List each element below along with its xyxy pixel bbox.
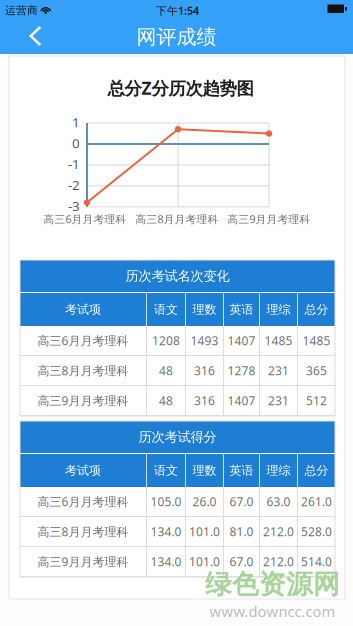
- staticText: 1407: [227, 332, 255, 348]
- staticText: 105.0: [150, 493, 181, 509]
- staticText: 高三8月月考理科: [37, 523, 128, 539]
- staticText: 1485: [302, 332, 330, 348]
- staticText: 231: [268, 392, 289, 408]
- staticText: 67.0: [229, 493, 253, 509]
- staticText: 理综: [266, 302, 290, 317]
- staticText: 高三6月月考理科: [43, 212, 126, 226]
- button[interactable]: Back: [13, 17, 57, 55]
- staticText: 514.0: [301, 553, 332, 569]
- staticText: 高三9月月考理科: [227, 212, 310, 226]
- staticText: 高三6月月考理科: [37, 332, 128, 348]
- staticText: 历次考试名次变化: [125, 268, 229, 284]
- staticText: 528.0: [301, 523, 332, 539]
- staticText: 512: [306, 392, 327, 408]
- staticText: 26.0: [192, 493, 216, 509]
- staticText: 1407: [227, 392, 255, 408]
- staticText: 考试项: [65, 463, 101, 478]
- staticText: 理数: [192, 463, 216, 478]
- staticText: -3: [68, 197, 80, 215]
- staticText: 语文: [154, 463, 178, 478]
- staticText: 理综: [266, 463, 290, 478]
- staticText: 网评成绩: [136, 25, 216, 49]
- staticText: 考试项: [65, 302, 101, 317]
- staticText: 316: [194, 392, 215, 408]
- staticText: 运营商: [5, 4, 38, 17]
- staticText: 下午1:54: [156, 3, 199, 18]
- staticText: -2: [68, 176, 80, 194]
- staticText: 总分Z分历次趋势图: [107, 76, 253, 99]
- staticText: 语文: [154, 302, 178, 317]
- staticText: 81.0: [229, 523, 253, 539]
- staticText: 134.0: [150, 553, 181, 569]
- staticText: 高三9月月考理科: [37, 392, 128, 408]
- staticText: 理数: [192, 302, 216, 317]
- staticText: 历次考试得分: [138, 429, 216, 445]
- staticText: 316: [194, 362, 215, 378]
- staticText: 212.0: [263, 523, 294, 539]
- staticText: 高三9月月考理科: [37, 553, 128, 569]
- staticText: -1: [68, 155, 80, 173]
- staticText: 48: [159, 392, 173, 408]
- staticText: 134.0: [150, 523, 181, 539]
- staticText: 231: [268, 362, 289, 378]
- staticText: 48: [159, 362, 173, 378]
- staticText: 101.0: [189, 523, 220, 539]
- staticText: 212.0: [263, 553, 294, 569]
- staticText: www.downcc.com: [209, 602, 335, 621]
- staticText: 101.0: [189, 553, 220, 569]
- staticText: 1278: [227, 362, 255, 378]
- staticText: 总分: [304, 302, 328, 317]
- staticText: 1208: [152, 332, 180, 348]
- staticText: 高三8月月考理科: [37, 362, 128, 378]
- staticText: 高三6月月考理科: [37, 493, 128, 509]
- staticText: 1485: [264, 332, 292, 348]
- staticText: 63.0: [266, 493, 290, 509]
- staticText: 总分: [304, 463, 328, 478]
- staticText: 1493: [190, 332, 218, 348]
- staticText: 67.0: [229, 553, 253, 569]
- staticText: 1: [72, 113, 80, 131]
- staticText: 365: [306, 362, 327, 378]
- staticText: 绿色资源网: [205, 568, 340, 601]
- staticText: 0: [72, 134, 80, 152]
- staticText: 英语: [229, 302, 253, 317]
- staticText: 261.0: [301, 493, 332, 509]
- staticText: 英语: [229, 463, 253, 478]
- staticText: 高三8月月考理科: [135, 212, 218, 226]
